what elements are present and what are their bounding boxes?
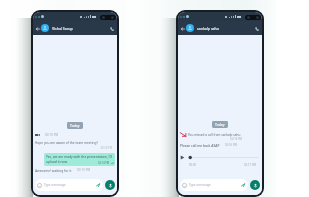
staticText: You missed a call from sankalp sahu xyxy=(188,133,241,137)
staticText: 02:16 PM xyxy=(180,137,242,141)
button[interactable]: Call xyxy=(253,25,260,32)
button[interactable]: Type a message xyxy=(35,179,103,191)
staticText: 00:00 xyxy=(189,163,197,167)
staticText: Today xyxy=(70,123,80,128)
staticText: 02:17 PM xyxy=(244,163,257,167)
button[interactable]: Type a message xyxy=(180,179,248,191)
staticText: 02:12 PM xyxy=(35,146,112,150)
staticText: Type a message xyxy=(189,183,211,187)
staticText: 02:14 PM xyxy=(98,161,110,165)
staticText: 02:15 PM xyxy=(77,168,91,172)
staticText: Yes, we are ready with the presentation,… xyxy=(46,154,115,164)
staticText: sankalp sahu xyxy=(197,26,219,31)
button[interactable]: Record voice message xyxy=(250,180,260,190)
button[interactable]: Record voice message xyxy=(105,180,115,190)
staticText: Awesome! waiting for it xyxy=(35,168,72,172)
button[interactable]: Yes, we are ready with the presentation,… xyxy=(44,153,115,166)
staticText: Hope you are aware of the team meeting? xyxy=(35,141,98,145)
button[interactable]: Call xyxy=(108,25,115,32)
button[interactable]: Back xyxy=(34,25,41,32)
staticText: Type a message xyxy=(44,183,66,187)
staticText: 02:10 PM xyxy=(45,133,59,137)
staticText: 02:16 PM xyxy=(225,143,238,147)
staticText: Please call me back ASAP xyxy=(180,143,220,147)
button[interactable]: Back xyxy=(179,25,186,32)
staticText: Vishal Sarup xyxy=(52,26,73,31)
staticText: Today xyxy=(215,122,225,127)
